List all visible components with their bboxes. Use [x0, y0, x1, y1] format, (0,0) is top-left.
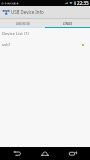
button[interactable]: Home: [34, 147, 56, 160]
button[interactable]: LINUX: [45, 18, 90, 28]
staticText: ANDROID: [16, 22, 30, 26]
staticText: USB Device Info: [11, 9, 44, 15]
button[interactable]: Back: [6, 147, 28, 160]
staticText: usb1: [2, 42, 11, 47]
button[interactable]: Recents: [62, 147, 84, 160]
button[interactable]: ANDROID: [0, 18, 45, 28]
staticText: LINUX: [63, 22, 73, 26]
staticText: 22:35: [77, 0, 89, 6]
staticText: Device List (1): [2, 31, 29, 37]
button[interactable]: usb1: [0, 38, 90, 51]
